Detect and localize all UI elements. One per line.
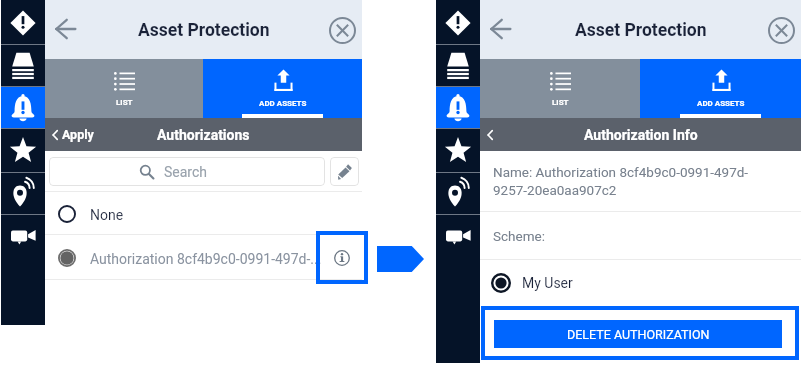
staticText: Authorization Info <box>584 127 698 143</box>
button[interactable]: Assets <box>436 45 480 87</box>
button[interactable]: ADD ASSETS <box>203 59 362 118</box>
staticText: Name: Authorization 8cf4b9c0-0991-497d- … <box>493 164 749 198</box>
button[interactable]: Info <box>322 235 362 279</box>
button[interactable]: Search <box>49 157 325 186</box>
button[interactable]: My User <box>480 260 801 306</box>
button[interactable]: ADD ASSETS <box>640 59 801 118</box>
staticText: Authorizations <box>157 127 250 143</box>
button[interactable]: Assets <box>1 45 45 87</box>
button[interactable]: Favorites <box>436 129 480 171</box>
button[interactable]: Authorization 8cf4b9c0-0991-497d-... <box>45 235 362 279</box>
button[interactable]: Video <box>1 215 45 257</box>
staticText: DELETE AUTHORIZATION <box>567 327 710 342</box>
staticText: Authorization 8cf4b9c0-0991-497d-... <box>90 251 322 267</box>
button[interactable]: Video <box>436 215 480 257</box>
button[interactable]: LIST <box>480 59 640 118</box>
button[interactable]: Alerts <box>1 2 45 44</box>
staticText: Asset Protection <box>138 20 270 41</box>
button[interactable]: DELETE AUTHORIZATION <box>494 320 782 348</box>
button[interactable]: Back <box>45 118 102 151</box>
button[interactable]: Tracking <box>1 173 45 215</box>
button[interactable]: Alerts <box>436 2 480 44</box>
staticText: ADD ASSETS <box>697 99 745 108</box>
staticText: LIST <box>552 98 569 107</box>
staticText: My User <box>522 275 573 291</box>
button[interactable]: Close <box>764 13 798 47</box>
staticText: Apply <box>62 127 94 142</box>
staticText: ADD ASSETS <box>259 99 307 108</box>
staticText: None <box>90 207 362 223</box>
button[interactable]: Back <box>45 9 85 49</box>
staticText: Asset Protection <box>575 20 707 41</box>
button[interactable]: Notifications <box>1 87 45 129</box>
staticText: Search <box>164 164 208 180</box>
button[interactable]: Notifications <box>436 87 480 129</box>
staticText: Scheme: <box>493 228 545 244</box>
button[interactable]: Edit <box>330 157 359 186</box>
button[interactable]: LIST <box>45 59 203 118</box>
staticText: LIST <box>116 98 133 107</box>
button[interactable]: Tracking <box>436 173 480 215</box>
button[interactable]: Close <box>325 13 359 47</box>
button[interactable]: None <box>45 192 362 234</box>
button[interactable]: Back <box>480 118 501 151</box>
button[interactable]: Back <box>480 9 520 49</box>
button[interactable]: Favorites <box>1 129 45 171</box>
